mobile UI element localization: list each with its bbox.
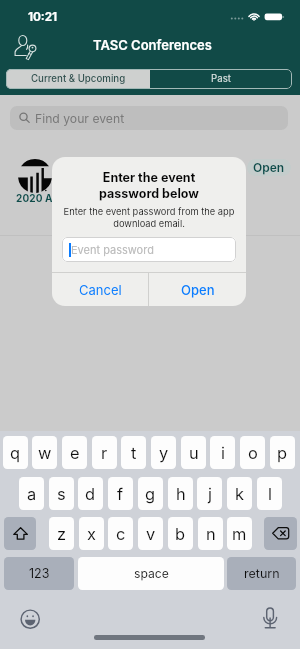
staticText: Event password (71, 243, 154, 256)
button[interactable]: space (78, 557, 224, 590)
staticText: e (70, 443, 80, 463)
staticText: v (146, 524, 156, 544)
button[interactable]: r (92, 436, 117, 469)
button[interactable]: n (198, 517, 223, 550)
staticText: n (206, 524, 216, 544)
staticText: f (117, 484, 124, 504)
staticText: return (244, 566, 280, 581)
staticText: h (176, 484, 186, 504)
staticText: Enter the event password from the app do… (54, 206, 244, 229)
staticText: i (221, 443, 225, 463)
staticText: Find your event (35, 111, 125, 126)
staticText: Open (253, 160, 285, 175)
staticText: x (87, 524, 96, 544)
button[interactable]: Open (247, 159, 291, 176)
staticText: TASC Conferences (93, 37, 212, 53)
staticText: w (38, 443, 52, 463)
staticText: Cancel (79, 282, 122, 298)
staticText: o (248, 443, 258, 463)
button[interactable]: Event password (62, 237, 236, 262)
button[interactable]: Find your event (10, 106, 288, 130)
button[interactable]: u (181, 436, 206, 469)
button[interactable]: v (138, 517, 163, 550)
staticText: m (232, 524, 247, 544)
staticText: Open (181, 282, 215, 298)
staticText: t (131, 443, 137, 463)
staticText: p (277, 443, 288, 463)
button[interactable]: m (227, 517, 252, 550)
button[interactable]: s (49, 477, 74, 510)
button[interactable]: c (108, 517, 133, 550)
staticText: u (189, 443, 199, 463)
button[interactable]: e (62, 436, 87, 469)
staticText: 2020 ACM (16, 192, 70, 204)
button[interactable]: Emoji keyboard (19, 608, 42, 631)
staticText: 10:21 (28, 10, 57, 24)
staticText: 123 (29, 566, 50, 581)
button[interactable]: x (79, 517, 104, 550)
button[interactable]: Current & Upcoming (6, 69, 150, 89)
button[interactable]: Shift (4, 517, 36, 550)
button[interactable]: a (19, 477, 44, 510)
button[interactable]: y (151, 436, 176, 469)
staticText: c (116, 524, 126, 544)
button[interactable]: t (121, 436, 146, 469)
staticText: q (10, 443, 21, 463)
staticText: Past (211, 73, 231, 85)
staticText: z (57, 524, 67, 544)
button[interactable]: g (138, 477, 163, 510)
button[interactable]: return (227, 557, 296, 590)
staticText: j (208, 484, 212, 504)
button[interactable]: Backspace (264, 517, 297, 550)
button[interactable]: f (108, 477, 133, 510)
staticText: b (175, 524, 186, 544)
staticText: space (134, 566, 169, 581)
button[interactable]: d (78, 477, 103, 510)
staticText: g (145, 484, 156, 504)
button[interactable]: Cancel (52, 273, 148, 306)
button[interactable]: q (3, 436, 28, 469)
staticText: Current & Upcoming (31, 73, 126, 85)
button[interactable]: Open (149, 273, 246, 306)
button[interactable]: Past (150, 69, 292, 89)
button[interactable]: k (227, 477, 252, 510)
button[interactable]: b (168, 517, 193, 550)
staticText: l (268, 484, 272, 504)
button[interactable]: p (270, 436, 295, 469)
staticText: k (235, 484, 244, 504)
button[interactable]: l (257, 477, 282, 510)
button[interactable]: h (168, 477, 193, 510)
staticText: d (85, 484, 96, 504)
staticText: y (159, 443, 169, 463)
button[interactable]: Dictation (262, 606, 280, 630)
staticText: s (57, 484, 66, 504)
button[interactable]: Account sign-in (12, 30, 42, 62)
staticText: r (101, 443, 108, 463)
button[interactable]: i (210, 436, 235, 469)
staticText: a (27, 484, 37, 504)
button[interactable]: 123 (4, 557, 74, 590)
button[interactable]: z (49, 517, 74, 550)
staticText: Enter the event password below (58, 170, 240, 201)
button[interactable]: o (240, 436, 265, 469)
button[interactable]: w (32, 436, 57, 469)
button[interactable]: j (197, 477, 222, 510)
